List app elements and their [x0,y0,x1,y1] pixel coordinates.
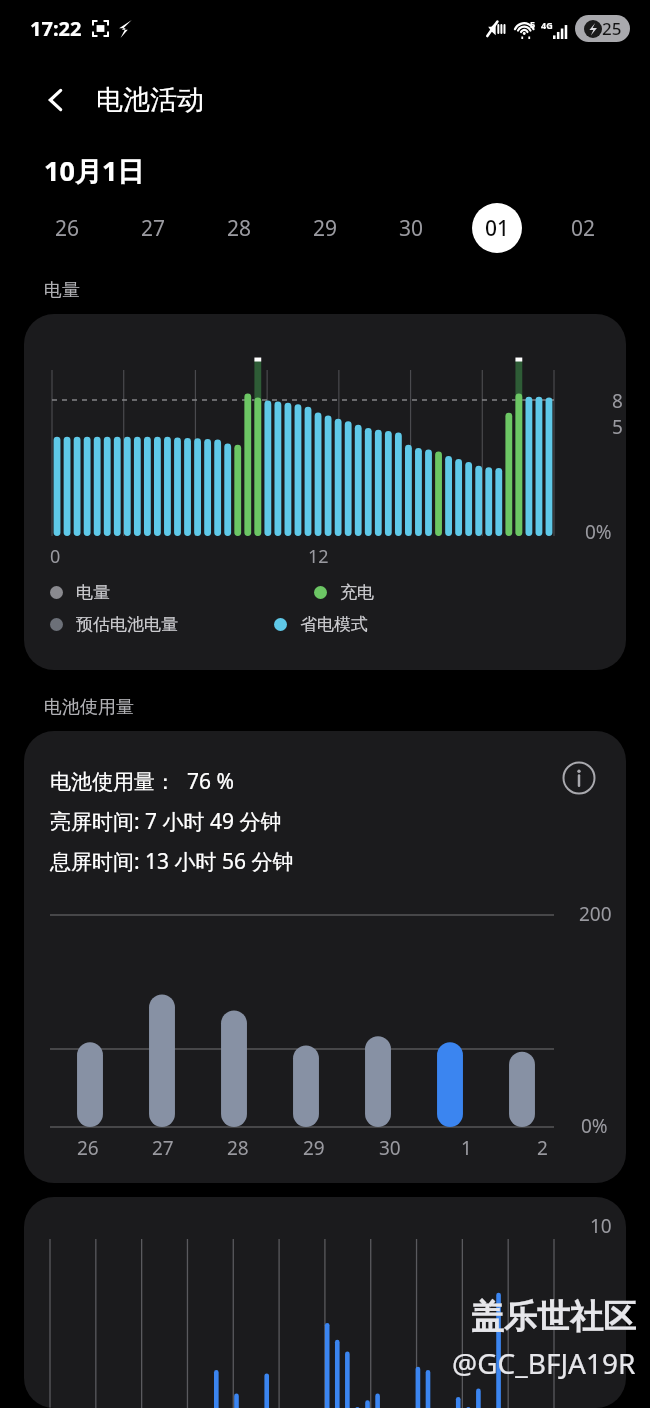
staticText: 17:22 [30,15,82,42]
button[interactable]: Info [556,755,602,801]
button[interactable]: 01 [454,189,540,267]
staticText: 28 [227,214,252,243]
staticText: 电量 [76,582,110,603]
staticText: 电池使用量 [44,696,134,719]
staticText: 27 [141,214,166,243]
button[interactable]: 30 [368,189,454,267]
staticText: 5 [530,18,536,30]
staticText: 0 [50,544,61,569]
staticText: 省电模式 [300,614,368,635]
staticText: 29 [303,1135,325,1161]
staticText: 200 [579,901,612,927]
staticText: 85 [612,388,626,440]
button[interactable]: 28 [196,189,282,267]
staticText: 26 [55,214,80,243]
staticText: 亮屏时间: 7 小时 49 分钟 [50,807,282,836]
button[interactable]: Back [32,76,80,124]
staticText: 0% [585,519,612,545]
staticText: 预估电池电量 [76,614,178,635]
button[interactable]: 10 [24,1197,626,1408]
staticText: 电池活动 [96,83,204,117]
staticText: 电量 [44,279,80,302]
staticText: 29 [313,214,338,243]
staticText: @GC_BFJA19R [452,1344,636,1382]
staticText: 息屏时间: 13 小时 56 分钟 [50,847,294,876]
staticText: 26 [77,1135,99,1161]
staticText: 27 [152,1135,174,1161]
staticText: 10 [590,1213,612,1239]
staticText: 电池使用量： 76 % [50,767,234,796]
staticText: 10月1日 [44,152,145,189]
staticText: 25 [602,17,622,40]
staticText: 1 [461,1135,472,1161]
button[interactable]: 27 [110,189,196,267]
staticText: 30 [379,1135,401,1161]
staticText: 28 [227,1135,249,1161]
staticText: 01 [485,214,510,243]
button[interactable]: 29 [282,189,368,267]
button[interactable]: 85 [24,314,626,670]
button[interactable]: 电池使用量： 76 % [24,731,626,1183]
staticText: 2 [537,1135,548,1161]
staticText: 0% [581,1113,608,1139]
button[interactable]: 02 [540,189,626,267]
staticText: 盖乐世社区 [471,1296,636,1338]
button[interactable]: 26 [24,189,110,267]
staticText: 4G [541,19,553,31]
staticText: 30 [399,214,424,243]
staticText: 02 [571,214,596,243]
staticText: 充电 [340,582,374,603]
staticText: 12 [308,544,329,569]
